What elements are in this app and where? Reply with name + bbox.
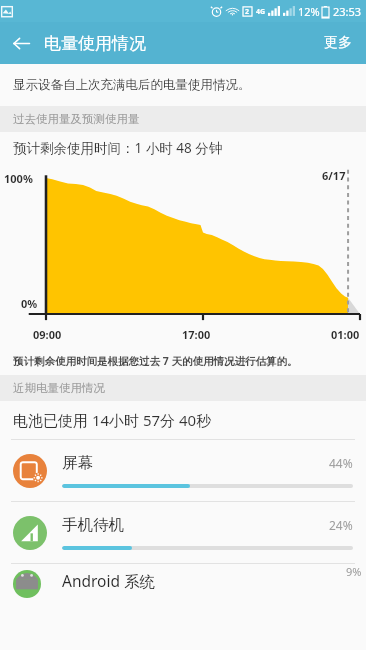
staticText: 24%	[329, 517, 353, 533]
staticText: 12%	[298, 4, 320, 19]
staticText: 预计剩余使用时间是根据您过去 7 天的使用情况进行估算的。	[13, 354, 298, 368]
staticText: 2	[245, 7, 250, 17]
staticText: 显示设备自上次充满电后的电量使用情况。	[13, 77, 251, 93]
staticText: 44%	[329, 455, 353, 471]
button[interactable]: 手机待机	[0, 502, 366, 563]
staticText: 4G	[256, 7, 266, 17]
staticText: 电量使用情况	[44, 33, 146, 54]
staticText: 更多	[324, 34, 352, 52]
staticText: 17:00	[182, 327, 211, 342]
staticText: 过去使用量及预测使用量	[13, 112, 140, 126]
staticText: 电池已使用 14小时 57分 40秒	[13, 410, 212, 430]
staticText: 23:53	[333, 4, 362, 19]
button[interactable]: 返回	[0, 22, 42, 64]
button[interactable]: 屏幕	[0, 440, 366, 501]
staticText: 01:00	[331, 327, 360, 342]
staticText: 0%	[21, 296, 38, 311]
button[interactable]: 更多	[310, 24, 366, 62]
staticText: 近期电量使用情况	[13, 381, 105, 395]
staticText: 6/17	[322, 168, 346, 183]
staticText: 100%	[4, 171, 33, 186]
staticText: 预计剩余使用时间：1 小时 48 分钟	[13, 139, 223, 157]
staticText: 手机待机	[62, 515, 124, 535]
staticText: 屏幕	[62, 453, 93, 473]
staticText: 09:00	[33, 327, 62, 342]
staticText: 9%	[346, 564, 362, 579]
staticText: Android 系统	[62, 570, 156, 591]
